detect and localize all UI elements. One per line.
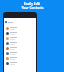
button[interactable] <box>4 56 36 61</box>
staticText: Your Contacts <box>21 6 44 10</box>
button[interactable] <box>4 36 36 41</box>
button[interactable] <box>4 26 36 31</box>
staticText: Easily Edit <box>24 2 40 6</box>
button[interactable] <box>4 61 36 66</box>
button[interactable] <box>4 31 36 36</box>
button[interactable] <box>4 51 36 56</box>
button[interactable] <box>4 46 36 51</box>
button[interactable] <box>4 18 36 26</box>
button[interactable] <box>4 41 36 46</box>
